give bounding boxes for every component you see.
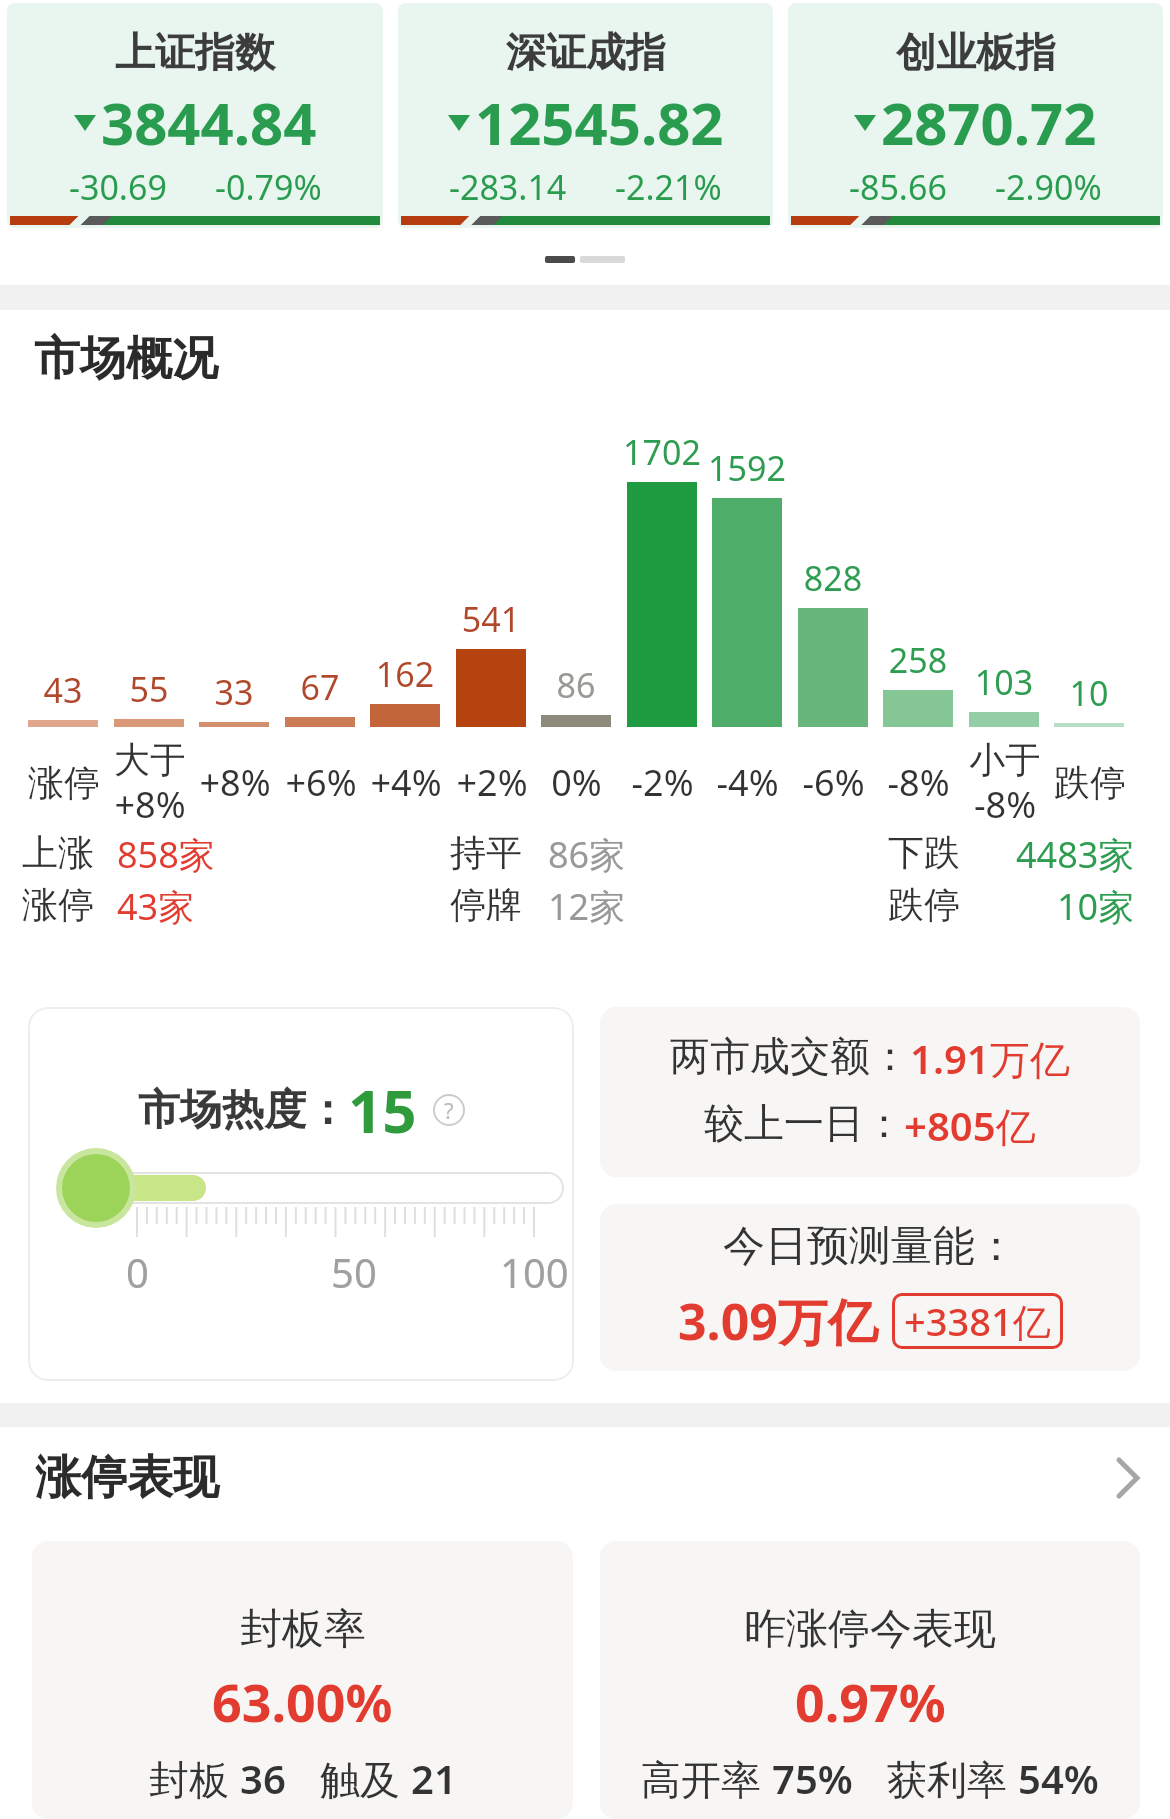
staticText: 深证成指 bbox=[506, 27, 666, 77]
button[interactable]: 今日预测量能： bbox=[600, 1204, 1140, 1371]
staticText: 持平 bbox=[450, 830, 522, 875]
staticText: 36 bbox=[240, 1751, 286, 1805]
staticText: 55 bbox=[84, 666, 214, 712]
staticText: 3.09万亿 bbox=[678, 1287, 878, 1355]
staticText: 大于 +8% bbox=[114, 737, 184, 828]
staticText: 67 bbox=[255, 664, 385, 710]
staticText: 4483家 bbox=[1016, 830, 1135, 878]
staticText: +4% bbox=[370, 758, 440, 807]
staticText: 15 bbox=[348, 1069, 417, 1151]
button[interactable]: 深证成指 bbox=[398, 3, 773, 228]
staticText: 跌停 bbox=[888, 882, 960, 927]
staticText: +2% bbox=[456, 758, 526, 807]
staticText: 市场热度： bbox=[138, 1084, 348, 1137]
button[interactable]: 封板率 bbox=[32, 1541, 573, 1819]
staticText: 3844.84 bbox=[101, 83, 317, 162]
staticText: -2.90% bbox=[995, 164, 1102, 210]
staticText: 858家 bbox=[117, 830, 215, 878]
staticText: -85.66 bbox=[849, 164, 947, 210]
staticText: 上证指数 bbox=[115, 27, 275, 77]
staticText: 0% bbox=[551, 758, 602, 807]
staticText: 54% bbox=[1018, 1751, 1099, 1805]
staticText: 162 bbox=[340, 651, 470, 697]
staticText: 创业板指 bbox=[896, 27, 1056, 77]
staticText: 较上一日： bbox=[704, 1098, 904, 1148]
staticText: 高开率 bbox=[641, 1751, 772, 1806]
staticText: 33 bbox=[169, 669, 299, 715]
staticText: 1592 bbox=[682, 445, 812, 491]
staticText: 541 bbox=[426, 596, 556, 642]
staticText: 市场概况 bbox=[34, 330, 218, 388]
staticText: -2% bbox=[631, 758, 694, 807]
staticText: 封板率 bbox=[240, 1603, 366, 1656]
staticText: 258 bbox=[853, 637, 983, 683]
button[interactable]: 昨涨停今表现 bbox=[600, 1541, 1140, 1819]
staticText: 21 bbox=[411, 1751, 457, 1805]
button[interactable]: 创业板指 bbox=[788, 3, 1163, 228]
staticText: 下跌 bbox=[888, 830, 960, 875]
staticText: 小于 -8% bbox=[969, 737, 1039, 828]
staticText: -6% bbox=[802, 758, 865, 807]
staticText: 获利率 bbox=[887, 1751, 1018, 1806]
staticText: 86家 bbox=[548, 830, 626, 878]
staticText: +805亿 bbox=[904, 1098, 1036, 1153]
staticText: 103 bbox=[939, 659, 1069, 705]
button[interactable]: 两市成交额： bbox=[600, 1007, 1140, 1177]
staticText: 828 bbox=[768, 555, 898, 601]
staticText: 1.91万亿 bbox=[910, 1031, 1070, 1086]
staticText: 今日预测量能： bbox=[723, 1220, 1017, 1273]
staticText: 10家 bbox=[1057, 882, 1135, 930]
staticText: 63.00% bbox=[212, 1666, 393, 1737]
staticText: +3381亿 bbox=[904, 1295, 1051, 1347]
staticText: -2.21% bbox=[615, 164, 722, 210]
staticText: -30.69 bbox=[69, 164, 167, 210]
staticText: +8% bbox=[199, 758, 269, 807]
staticText: 86 bbox=[511, 662, 641, 708]
staticText: -0.79% bbox=[215, 164, 322, 210]
staticText: 2870.72 bbox=[881, 83, 1097, 162]
staticText: -4% bbox=[716, 758, 779, 807]
staticText: 涨停 bbox=[22, 882, 94, 927]
staticText: 10 bbox=[1024, 670, 1154, 716]
staticText: 75% bbox=[772, 1751, 853, 1805]
staticText: 两市成交额： bbox=[670, 1031, 910, 1081]
staticText: 43家 bbox=[117, 882, 195, 930]
staticText: +6% bbox=[285, 758, 355, 807]
staticText: 12545.82 bbox=[475, 83, 724, 162]
staticText: 昨涨停今表现 bbox=[744, 1603, 996, 1656]
staticText: 1702 bbox=[597, 429, 727, 475]
staticText: 涨停表现 bbox=[35, 1449, 219, 1507]
staticText: 50 bbox=[331, 1245, 377, 1299]
button[interactable]: 市场热度： bbox=[28, 1007, 574, 1381]
staticText: 12家 bbox=[548, 882, 626, 930]
staticText: 43 bbox=[0, 667, 128, 713]
staticText: 跌停 bbox=[1054, 760, 1124, 805]
button[interactable] bbox=[1116, 1457, 1140, 1499]
staticText: 封板 bbox=[149, 1751, 240, 1806]
staticText: -8% bbox=[887, 758, 950, 807]
staticText: 0 bbox=[126, 1245, 149, 1299]
staticText: -283.14 bbox=[449, 164, 567, 210]
staticText: 0.97% bbox=[795, 1666, 946, 1737]
staticText: 涨停 bbox=[28, 760, 98, 805]
staticText: 上涨 bbox=[22, 830, 94, 875]
staticText: ? bbox=[444, 1095, 454, 1125]
staticText: 触及 bbox=[320, 1751, 411, 1806]
staticText: 100 bbox=[500, 1245, 569, 1299]
button[interactable]: 上证指数 bbox=[7, 3, 383, 228]
staticText: 停牌 bbox=[450, 882, 522, 927]
